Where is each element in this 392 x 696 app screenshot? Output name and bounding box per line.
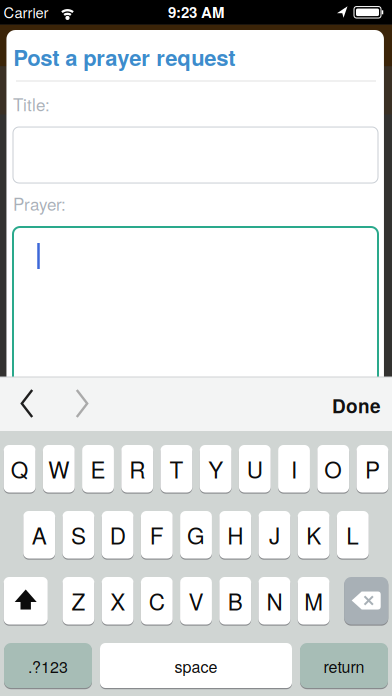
staticText: Done — [332, 392, 381, 419]
staticText: Prayer: — [13, 191, 66, 216]
staticText: Title: — [13, 92, 50, 116]
staticText: D — [110, 519, 126, 551]
staticText: M — [304, 585, 323, 617]
staticText: H — [227, 519, 243, 551]
staticText: return — [323, 654, 364, 677]
staticText: .?123 — [28, 654, 68, 677]
staticText: T — [169, 453, 183, 485]
staticText: Carrier — [3, 1, 48, 23]
staticText: Z — [71, 585, 85, 617]
staticText: 9:23 AM — [168, 1, 224, 23]
staticText: U — [247, 453, 263, 485]
staticText: Post a prayer request — [13, 41, 235, 73]
staticText: F — [150, 519, 164, 551]
staticText: I — [291, 453, 297, 485]
staticText: G — [187, 519, 205, 551]
staticText: Q — [11, 453, 29, 485]
staticText: N — [266, 585, 282, 617]
staticText: X — [110, 585, 125, 617]
staticText: W — [48, 453, 69, 485]
staticText: C — [149, 585, 165, 617]
staticText: K — [306, 519, 321, 551]
staticText: L — [346, 519, 359, 551]
staticText: A — [32, 519, 47, 551]
staticText: B — [228, 585, 243, 617]
staticText: space — [174, 654, 217, 677]
staticText: J — [269, 519, 280, 551]
staticText: O — [324, 453, 342, 485]
staticText: V — [188, 585, 203, 617]
staticText: R — [129, 453, 145, 485]
staticText: E — [90, 453, 105, 485]
staticText: S — [71, 519, 86, 551]
staticText: Y — [208, 453, 223, 485]
staticText: P — [365, 453, 380, 485]
